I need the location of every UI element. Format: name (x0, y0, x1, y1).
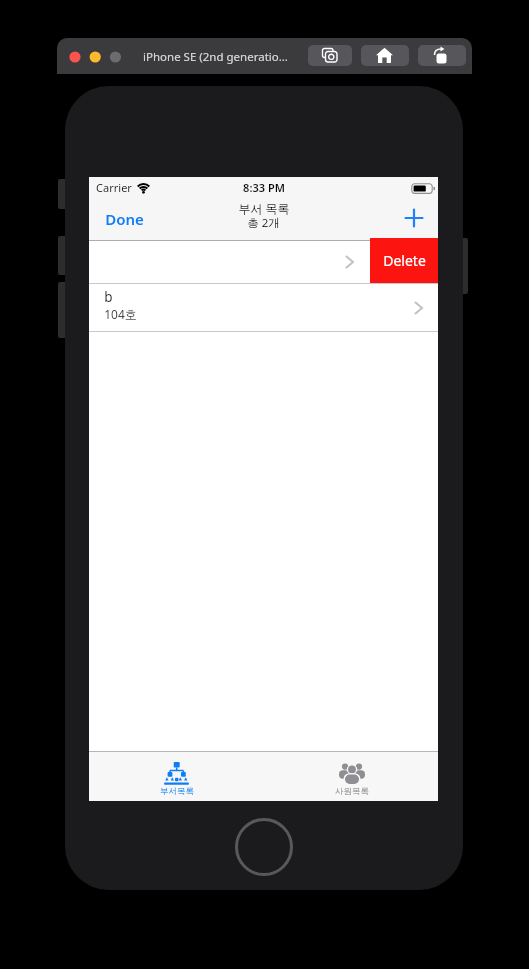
button[interactable] (418, 45, 466, 66)
button[interactable] (89, 241, 438, 284)
staticText: Carrier (96, 180, 132, 195)
staticText: 104호 (104, 306, 137, 322)
staticText: 8:33 PM (243, 180, 285, 195)
button[interactable] (235, 818, 293, 876)
staticText: 부서목록 (160, 786, 194, 797)
button[interactable] (361, 45, 409, 66)
staticText: 사원목록 (335, 786, 369, 797)
staticText: 총 2개 (247, 215, 280, 230)
button[interactable] (264, 752, 439, 801)
staticText: 부서 목록 (238, 200, 290, 215)
button[interactable] (89, 752, 264, 801)
staticText: Done (105, 209, 144, 229)
button[interactable] (308, 45, 352, 66)
button[interactable] (400, 204, 428, 232)
button[interactable] (89, 284, 438, 331)
button[interactable]: Delete (370, 238, 438, 283)
staticText: Delete (383, 251, 426, 270)
staticText: b (104, 288, 113, 305)
staticText: iPhone SE (2nd generatio... (143, 49, 288, 65)
button[interactable]: Done (105, 197, 165, 240)
